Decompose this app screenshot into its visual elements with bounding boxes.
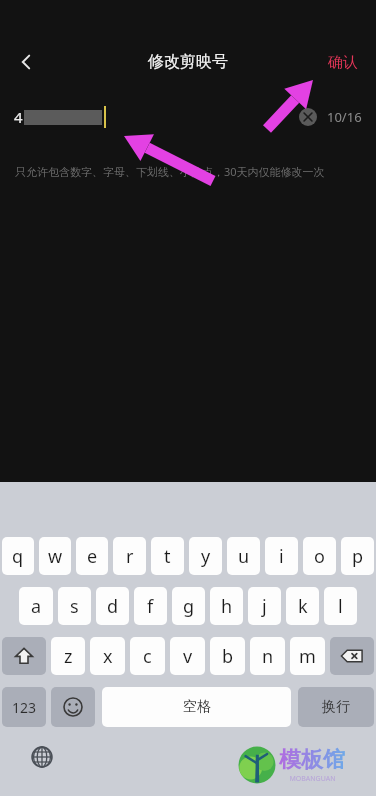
staticText: v (183, 644, 193, 669)
staticText: 123 (12, 698, 37, 717)
staticText: d (107, 594, 119, 619)
button[interactable]: Backspace (330, 637, 374, 675)
button[interactable]: m (290, 637, 325, 675)
button[interactable]: n (250, 637, 285, 675)
button[interactable]: t (151, 537, 184, 575)
staticText: 10/16 (327, 108, 362, 126)
button[interactable]: l (324, 587, 357, 625)
staticText: a (31, 594, 42, 619)
button[interactable]: d (96, 587, 129, 625)
button[interactable]: Emoji (51, 687, 95, 727)
button[interactable]: Clear (299, 108, 317, 126)
staticText: 空格 (183, 698, 211, 716)
staticText: b (222, 644, 234, 669)
staticText: n (262, 644, 274, 669)
staticText: e (87, 544, 98, 569)
button[interactable]: c (130, 637, 165, 675)
button[interactable]: r (113, 537, 146, 575)
staticText: 修改剪映号 (148, 52, 228, 72)
button[interactable]: i (265, 537, 298, 575)
button[interactable]: u (227, 537, 260, 575)
staticText: s (70, 594, 79, 619)
staticText: w (48, 544, 63, 569)
staticText: k (298, 594, 308, 619)
staticText: c (143, 644, 152, 669)
staticText: x (103, 644, 113, 669)
staticText: 模板馆 (279, 746, 345, 774)
button[interactable]: 换行 (298, 687, 374, 727)
staticText: t (164, 544, 171, 569)
staticText: r (126, 544, 134, 569)
staticText: o (314, 544, 325, 569)
button[interactable]: v (170, 637, 205, 675)
button[interactable]: 确认 (324, 47, 362, 78)
button[interactable]: Change language (28, 743, 56, 771)
staticText: j (262, 594, 267, 619)
staticText: 确认 (328, 53, 358, 72)
staticText: u (238, 544, 250, 569)
staticText: f (147, 594, 154, 619)
button[interactable]: e (76, 537, 108, 575)
button[interactable]: o (303, 537, 336, 575)
button[interactable]: y (189, 537, 222, 575)
staticText: 4 (14, 107, 23, 127)
button[interactable]: p (341, 537, 374, 575)
staticText: p (352, 544, 364, 569)
staticText: q (12, 544, 24, 569)
staticText: l (338, 594, 343, 619)
button[interactable]: s (58, 587, 91, 625)
button[interactable]: h (210, 587, 243, 625)
staticText: y (201, 544, 211, 569)
button[interactable]: a (19, 587, 53, 625)
staticText: i (279, 544, 284, 569)
button[interactable]: j (248, 587, 281, 625)
staticText: m (299, 644, 316, 669)
button[interactable]: q (2, 537, 34, 575)
staticText: 换行 (322, 698, 350, 716)
staticText: 只允许包含数字、字母、下划线、小数点，30天内仅能修改一次 (15, 164, 361, 179)
button[interactable]: 123 (2, 687, 46, 727)
button[interactable]: g (172, 587, 205, 625)
button[interactable]: Shift (2, 637, 46, 675)
button[interactable]: k (286, 587, 319, 625)
button[interactable]: z (51, 637, 85, 675)
staticText: g (183, 594, 195, 619)
staticText: MOBANGUAN (289, 774, 336, 784)
button[interactable]: x (90, 637, 125, 675)
staticText: h (221, 594, 233, 619)
button[interactable]: b (210, 637, 245, 675)
button[interactable]: 空格 (102, 687, 291, 727)
button[interactable]: f (134, 587, 167, 625)
staticText: z (64, 644, 73, 669)
button[interactable]: w (39, 537, 71, 575)
button[interactable]: Back (6, 42, 46, 82)
